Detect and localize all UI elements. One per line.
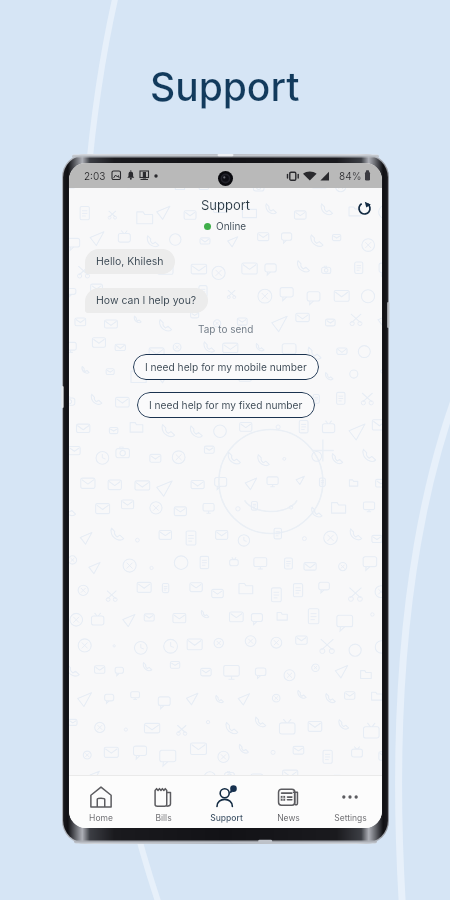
button[interactable]: Refresh bbox=[353, 197, 375, 219]
button[interactable]: I need help for my mobile number bbox=[133, 354, 319, 380]
staticText: Settings bbox=[334, 813, 367, 823]
button[interactable]: Bills bbox=[133, 776, 193, 828]
staticText: Support bbox=[201, 197, 251, 213]
button[interactable]: Home bbox=[71, 776, 131, 828]
staticText: I need help for my fixed number bbox=[149, 399, 303, 411]
button[interactable]: Support bbox=[196, 776, 256, 828]
staticText: 84% bbox=[339, 170, 362, 182]
button[interactable]: News bbox=[258, 776, 318, 828]
staticText: Online bbox=[216, 220, 247, 232]
staticText: Support bbox=[150, 63, 300, 110]
staticText: 2:03 bbox=[84, 170, 106, 182]
button[interactable]: I need help for my fixed number bbox=[137, 392, 315, 418]
staticText: Home bbox=[89, 813, 113, 823]
staticText: Tap to send bbox=[198, 323, 254, 335]
button[interactable]: Settings bbox=[320, 776, 380, 828]
staticText: How can I help you? bbox=[96, 294, 197, 307]
staticText: Hello, Khilesh bbox=[96, 255, 164, 268]
button[interactable]: How can I help you? bbox=[85, 288, 208, 313]
staticText: I need help for my mobile number bbox=[145, 361, 307, 373]
staticText: Support bbox=[210, 813, 243, 823]
button[interactable]: Hello, Khilesh bbox=[85, 249, 175, 274]
staticText: News bbox=[277, 813, 300, 823]
staticText: Bills bbox=[155, 813, 172, 823]
